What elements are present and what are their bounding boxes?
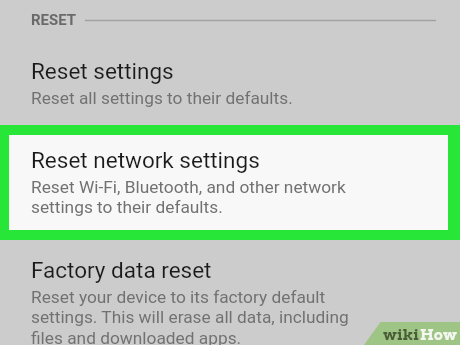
staticText: Reset settings: [31, 58, 174, 84]
staticText: Factory data reset: [31, 257, 212, 283]
staticText: Reset your device to its factory default…: [31, 287, 360, 345]
staticText: How: [420, 326, 457, 344]
button[interactable]: RESET: [31, 11, 77, 29]
staticText: Reset network settings: [31, 147, 260, 173]
staticText: Reset Wi-Fi, Bluetooth, and other networ…: [31, 177, 353, 218]
other: wikiHow watermark: [383, 326, 460, 345]
button[interactable]: Reset network settings: [0, 125, 460, 240]
staticText: RESET: [31, 11, 77, 29]
staticText: Reset all settings to their defaults.: [31, 88, 293, 108]
staticText: wiki: [383, 326, 420, 344]
button[interactable]: Reset settings: [0, 58, 460, 108]
button[interactable]: Factory data reset: [0, 257, 460, 345]
